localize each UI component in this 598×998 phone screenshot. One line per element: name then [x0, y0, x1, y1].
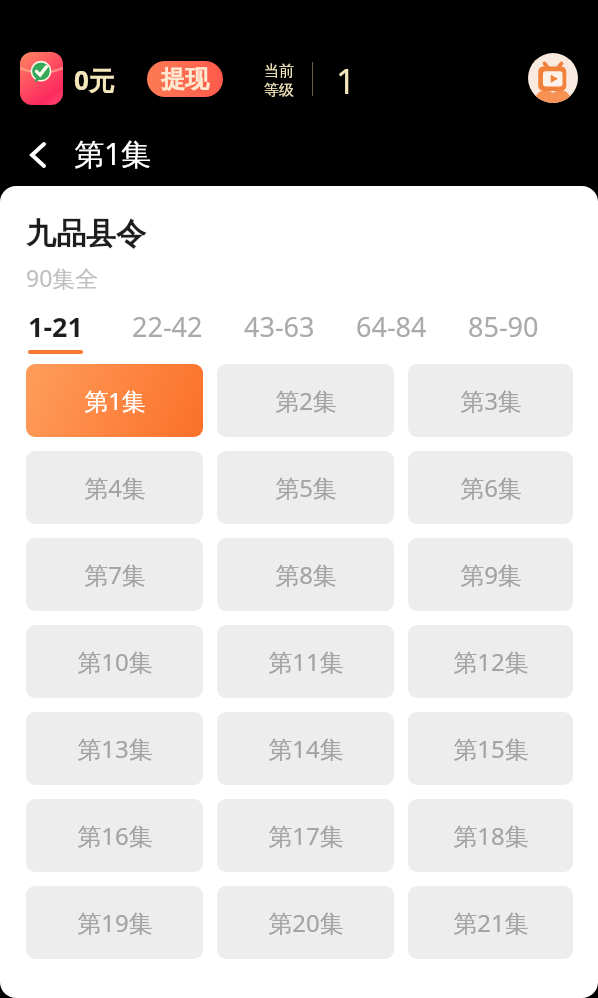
button[interactable]: 第19集: [26, 886, 203, 959]
button[interactable]: Red packet balance: [20, 52, 63, 105]
button[interactable]: 第15集: [408, 712, 573, 785]
button[interactable]: 第1集: [26, 364, 203, 437]
button[interactable]: Back: [22, 139, 54, 170]
button[interactable]: 第3集: [408, 364, 573, 437]
staticText: 85-90: [468, 308, 539, 345]
button[interactable]: 第5集: [217, 451, 394, 524]
staticText: 九品县令: [26, 215, 146, 253]
staticText: 第4集: [84, 471, 146, 504]
staticText: 第14集: [268, 732, 344, 765]
staticText: 第7集: [84, 558, 146, 591]
staticText: 第17集: [268, 819, 344, 852]
button[interactable]: 提现: [147, 61, 223, 97]
staticText: 第11集: [268, 645, 344, 678]
staticText: 第19集: [77, 906, 153, 939]
button[interactable]: 43-63: [223, 306, 335, 356]
staticText: 第12集: [453, 645, 529, 678]
button[interactable]: 64-84: [335, 306, 447, 356]
button[interactable]: 第11集: [217, 625, 394, 698]
button[interactable]: 第6集: [408, 451, 573, 524]
staticText: 1: [336, 58, 356, 104]
button[interactable]: 第9集: [408, 538, 573, 611]
staticText: 64-84: [356, 308, 427, 345]
staticText: 43-63: [244, 308, 315, 345]
staticText: 第10集: [77, 645, 153, 678]
staticText: 提现: [161, 64, 209, 94]
staticText: 第21集: [453, 906, 529, 939]
staticText: 第8集: [275, 558, 337, 591]
button[interactable]: 当前: [264, 62, 294, 100]
button[interactable]: 第16集: [26, 799, 203, 872]
staticText: 第16集: [77, 819, 153, 852]
staticText: 第20集: [268, 906, 344, 939]
staticText: 第2集: [275, 384, 337, 417]
staticText: 第3集: [460, 384, 522, 417]
staticText: 第1集: [74, 133, 152, 174]
staticText: 1-21: [28, 308, 83, 345]
button[interactable]: 第12集: [408, 625, 573, 698]
button[interactable]: 第7集: [26, 538, 203, 611]
button[interactable]: App logo: [528, 53, 578, 103]
button[interactable]: 第4集: [26, 451, 203, 524]
button[interactable]: 第2集: [217, 364, 394, 437]
staticText: 22-42: [132, 308, 203, 345]
staticText: 第9集: [460, 558, 522, 591]
button[interactable]: 85-90: [447, 306, 559, 356]
staticText: 第18集: [453, 819, 529, 852]
button[interactable]: 第18集: [408, 799, 573, 872]
button[interactable]: 第17集: [217, 799, 394, 872]
button[interactable]: 第20集: [217, 886, 394, 959]
staticText: 第13集: [77, 732, 153, 765]
staticText: 第5集: [275, 471, 337, 504]
staticText: 90集全: [26, 262, 99, 293]
button[interactable]: 第8集: [217, 538, 394, 611]
button[interactable]: 第13集: [26, 712, 203, 785]
staticText: 第6集: [460, 471, 522, 504]
button[interactable]: 第10集: [26, 625, 203, 698]
staticText: 第15集: [453, 732, 529, 765]
button[interactable]: 22-42: [111, 306, 223, 356]
button[interactable]: 第14集: [217, 712, 394, 785]
staticText: 当前: [264, 62, 294, 81]
button[interactable]: 1-21: [0, 306, 111, 356]
staticText: 等级: [264, 81, 294, 100]
button[interactable]: 第21集: [408, 886, 573, 959]
staticText: 第1集: [84, 384, 146, 417]
staticText: 0元: [74, 62, 115, 98]
